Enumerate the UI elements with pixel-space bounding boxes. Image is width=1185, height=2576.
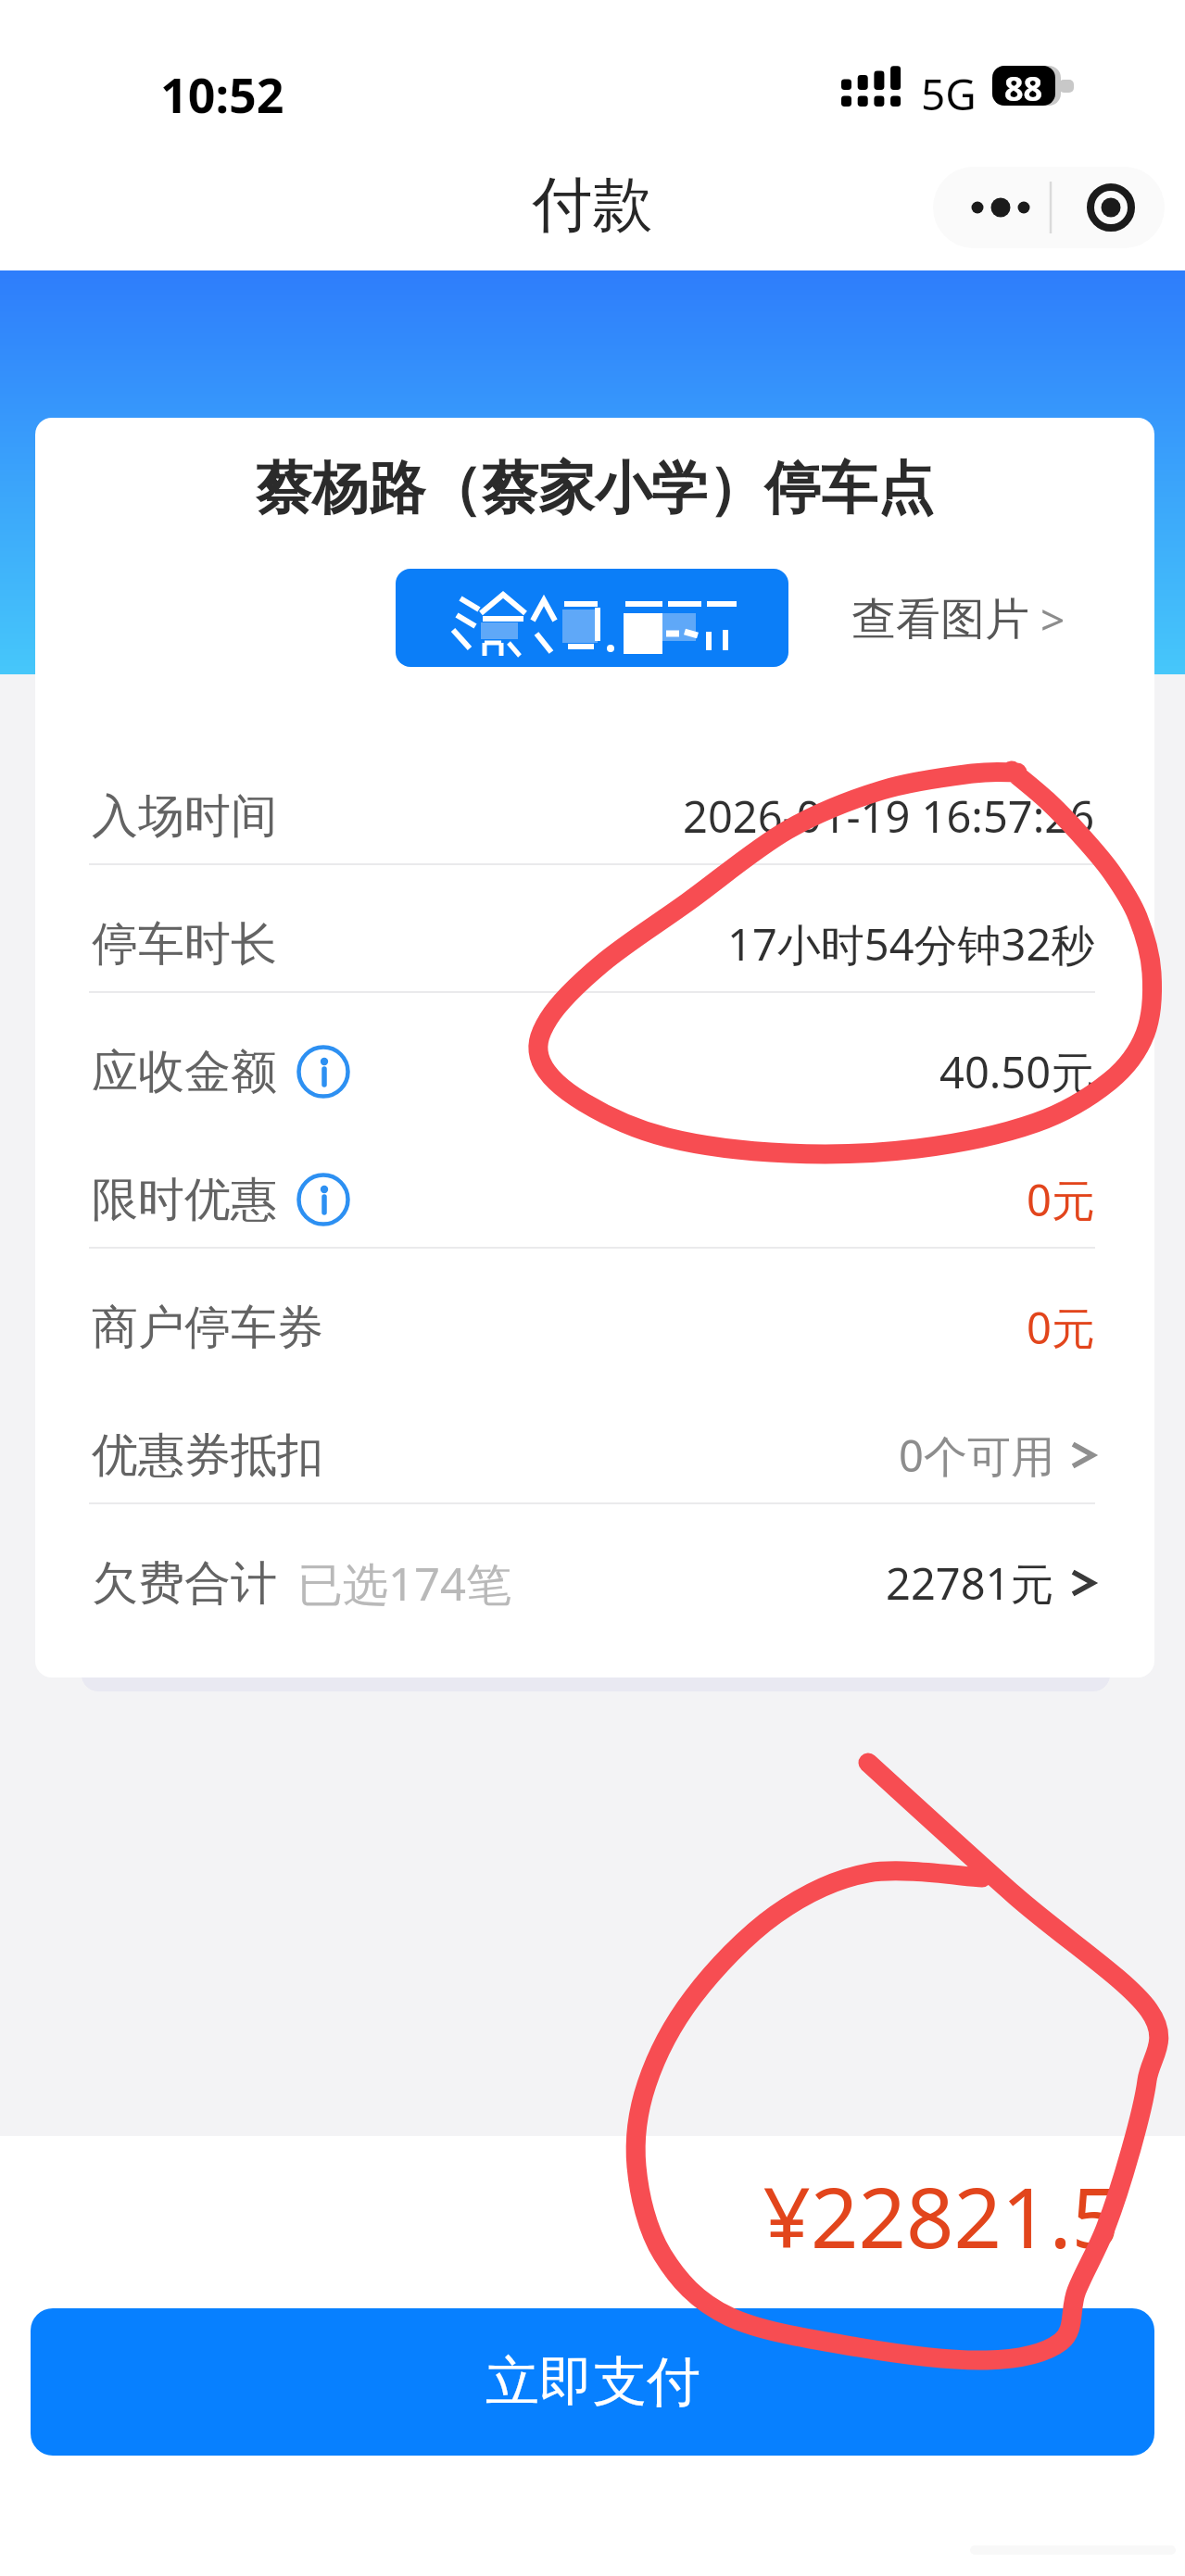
staticText: 立即支付 <box>485 2348 700 2416</box>
staticText: > <box>1040 590 1065 648</box>
button[interactable]: 查看图片 <box>851 590 1065 648</box>
button[interactable]: 限时优惠 <box>35 1121 1154 1249</box>
button[interactable]: 停车时长 <box>35 865 1154 993</box>
button[interactable] <box>396 569 788 667</box>
staticText: 应收金额 <box>92 1043 277 1101</box>
staticText: 限时优惠 <box>92 1171 277 1229</box>
staticText: 蔡杨路（蔡家小学）停车点 <box>35 453 1154 524</box>
staticText: ¥22821.5 <box>0 2159 1119 2273</box>
staticText: 入场时间 <box>92 787 277 846</box>
staticText: 10:52 <box>160 61 284 127</box>
staticText: 付款 <box>0 167 1185 243</box>
button[interactable]: 商户停车券 <box>35 1249 1154 1376</box>
staticText: 商户停车券 <box>92 1299 323 1357</box>
staticText: 已选174笔 <box>297 1552 512 1615</box>
button[interactable]: 应收金额 <box>35 993 1154 1121</box>
staticText: 88 <box>1004 66 1043 106</box>
staticText: 5G <box>921 65 977 123</box>
staticText: 0元 <box>1027 1170 1095 1229</box>
staticText: 查看图片 <box>851 592 1029 647</box>
staticText: 欠费合计 <box>92 1554 277 1613</box>
staticText: 17小时54分钟32秒 <box>727 914 1095 974</box>
staticText: 优惠券抵扣 <box>92 1426 323 1485</box>
button[interactable]: More options and close <box>933 167 1165 248</box>
button[interactable]: 欠费合计 <box>35 1504 1154 1632</box>
staticText: 0元 <box>1027 1298 1095 1357</box>
button[interactable]: 入场时间 <box>35 737 1154 865</box>
button[interactable]: 优惠券抵扣 <box>35 1376 1154 1504</box>
staticText: 40.50元 <box>939 1042 1095 1101</box>
staticText: 2026-01-19 16:57:26 <box>683 786 1095 846</box>
staticText: 停车时长 <box>92 915 277 974</box>
button[interactable]: 立即支付 <box>31 2308 1154 2456</box>
staticText: 0个可用 <box>899 1426 1054 1485</box>
staticText: 22781元 <box>886 1553 1054 1613</box>
